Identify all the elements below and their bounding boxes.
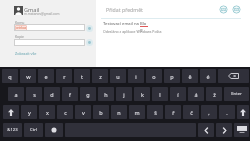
button[interactable]: u — [110, 69, 126, 83]
button[interactable]: á — [188, 87, 204, 101]
button[interactable]: é — [200, 69, 216, 83]
button[interactable]: f — [62, 87, 78, 101]
staticText: é — [206, 73, 210, 80]
button[interactable]: z — [92, 69, 108, 83]
staticText: x — [46, 109, 49, 116]
button[interactable]: í — [170, 87, 186, 101]
staticText: j — [123, 91, 125, 98]
button[interactable]: ě — [182, 69, 198, 83]
button[interactable] — [14, 39, 85, 46]
button[interactable]: Add contact — [86, 39, 93, 46]
button[interactable]: Emoji — [45, 123, 63, 137]
staticText: ž — [213, 91, 216, 98]
staticText: Kopie — [15, 34, 25, 39]
staticText: v — [82, 109, 85, 116]
button[interactable]: š — [147, 105, 163, 119]
staticText: p — [170, 73, 174, 80]
button[interactable]: e — [38, 69, 54, 83]
staticText: a — [14, 91, 18, 98]
staticText: í — [177, 91, 179, 98]
button[interactable]: d — [44, 87, 60, 101]
staticText: petrkas — [15, 26, 27, 30]
button[interactable]: i — [128, 69, 144, 83]
button[interactable]: Left — [198, 123, 214, 137]
button[interactable]: b — [93, 105, 109, 119]
staticText: f — [69, 91, 71, 98]
button[interactable]: h — [98, 87, 114, 101]
staticText: e — [44, 73, 48, 80]
button[interactable]: Attach — [219, 5, 228, 14]
button[interactable]: m — [129, 105, 145, 119]
button[interactable]: q — [2, 69, 18, 83]
staticText: i — [135, 73, 137, 80]
staticText: d — [50, 91, 54, 98]
staticText: &123 — [7, 127, 18, 133]
staticText: m.matanov@gmail.com — [24, 12, 60, 16]
staticText: Blog — [140, 21, 148, 33]
button[interactable]: Add contact — [86, 25, 93, 32]
staticText: Odesláno z aplikace Windows Pošta — [103, 29, 162, 34]
staticText: . — [226, 109, 228, 116]
button[interactable]: č — [183, 105, 199, 119]
button[interactable]: Shift — [237, 105, 249, 119]
button[interactable]: l — [152, 87, 168, 101]
staticText: g — [86, 91, 90, 98]
staticText: k — [141, 91, 144, 98]
button[interactable]: n — [111, 105, 127, 119]
button[interactable]: j — [116, 87, 132, 101]
staticText: Komu — [15, 20, 25, 25]
button[interactable]: g — [80, 87, 96, 101]
button[interactable]: o — [146, 69, 162, 83]
staticText: ř — [172, 109, 175, 116]
staticText: l — [159, 91, 161, 98]
staticText: Ctrl — [30, 127, 37, 133]
button[interactable]: . — [219, 105, 235, 119]
staticText: á — [194, 91, 198, 98]
button[interactable]: &123 — [3, 123, 22, 137]
button[interactable]: x — [39, 105, 55, 119]
button[interactable]: a — [8, 87, 24, 101]
staticText: m — [134, 109, 140, 116]
staticText: , — [208, 109, 210, 116]
button[interactable]: Enter — [224, 87, 249, 101]
button[interactable]: v — [75, 105, 91, 119]
staticText: š — [154, 109, 157, 116]
button[interactable]: Shift — [3, 105, 19, 119]
button[interactable]: petrkas — [14, 24, 85, 31]
button[interactable]: Hide keyboard — [234, 123, 249, 137]
button[interactable]: Zobrazit vše — [15, 51, 37, 56]
button[interactable]: s — [26, 87, 42, 101]
staticText: č — [190, 109, 193, 116]
button[interactable]: r — [56, 69, 72, 83]
staticText: c — [64, 109, 67, 116]
staticText: r — [63, 73, 66, 80]
staticText: h — [104, 91, 108, 98]
button[interactable]: Send — [232, 5, 241, 14]
button[interactable]: c — [57, 105, 73, 119]
staticText: z — [99, 73, 102, 80]
button[interactable]: Right — [216, 123, 232, 137]
button[interactable]: Ctrl — [24, 123, 43, 137]
button[interactable]: w — [20, 69, 36, 83]
staticText: Enter — [231, 91, 242, 97]
staticText: Přidat předmět — [106, 6, 143, 13]
button[interactable]: t — [74, 69, 90, 83]
staticText: Testovací email na — [103, 21, 140, 27]
button[interactable]: ž — [206, 87, 222, 101]
staticText: w — [26, 73, 31, 80]
staticText: y — [28, 109, 31, 116]
staticText: b — [99, 109, 103, 116]
button[interactable]: , — [201, 105, 217, 119]
staticText: q — [8, 73, 12, 80]
staticText: o — [152, 73, 156, 80]
button[interactable]: y — [21, 105, 37, 119]
staticText: u — [116, 73, 120, 80]
button[interactable]: Backspace — [218, 69, 249, 83]
button[interactable]: p — [164, 69, 180, 83]
staticText: t — [81, 73, 83, 80]
button[interactable]: k — [134, 87, 150, 101]
button[interactable]: ř — [165, 105, 181, 119]
staticText: s — [33, 91, 36, 98]
staticText: ě — [188, 73, 192, 80]
